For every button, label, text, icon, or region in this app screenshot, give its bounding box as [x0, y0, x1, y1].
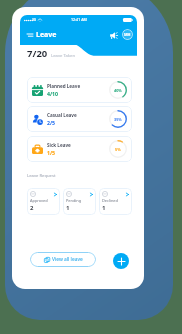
staticText: 3G [32, 18, 37, 22]
staticText: 2 [30, 204, 34, 212]
staticText: Casual Leave [47, 112, 77, 118]
button[interactable]: Menu [24, 28, 35, 41]
staticText: View all leave [52, 256, 83, 263]
staticText: Leave Taken [51, 53, 76, 59]
staticText: Leave Request [27, 173, 56, 179]
button[interactable]: View all leave [30, 252, 96, 267]
button[interactable]: Declined [99, 188, 132, 215]
button[interactable]: Add leave [113, 253, 129, 269]
button[interactable]: Casual Leave [27, 106, 132, 132]
staticText: Approved [30, 198, 48, 203]
staticText: 2/5 [47, 119, 56, 126]
staticText: Pending [66, 198, 82, 203]
staticText: 1 [102, 204, 106, 212]
button[interactable]: Announcements [108, 29, 120, 41]
button[interactable]: Profile [122, 29, 133, 40]
staticText: 40% [114, 88, 122, 93]
staticText: Sick Leave [47, 142, 71, 148]
button[interactable]: Pending [63, 188, 96, 215]
button[interactable]: Sick Leave [27, 136, 132, 162]
staticText: 7/20 [27, 47, 48, 60]
staticText: Planned Leave [47, 83, 81, 89]
staticText: 5% [115, 147, 121, 152]
staticText: Declined [102, 198, 118, 203]
staticText: Leave [36, 30, 57, 40]
staticText: 4/10 [47, 90, 59, 97]
staticText: 1/5 [47, 149, 56, 156]
staticText: 12:41 AM [71, 17, 87, 22]
button[interactable]: Planned Leave [27, 77, 132, 103]
staticText: 1 [66, 204, 70, 212]
button[interactable]: Approved [27, 188, 60, 215]
staticText: MH [124, 32, 131, 37]
staticText: 35% [114, 117, 122, 122]
